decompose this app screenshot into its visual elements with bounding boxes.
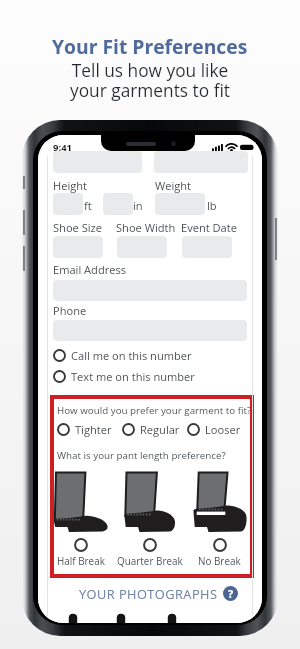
staticText: lb <box>207 198 217 213</box>
button[interactable]: Text me on this number <box>53 369 195 384</box>
button[interactable]: Help <box>223 586 238 601</box>
staticText: Tell us how you like your garments to fi… <box>70 59 230 102</box>
staticText: Call me on this number <box>71 348 192 363</box>
staticText: No Break <box>198 554 241 567</box>
staticText: Height <box>53 178 87 193</box>
staticText: ? <box>228 586 234 601</box>
staticText: Regular <box>140 422 180 437</box>
staticText: Phone <box>53 303 87 318</box>
staticText: Half Break <box>57 554 105 567</box>
staticText: Tighter <box>75 422 112 437</box>
staticText: 9:41 <box>53 141 73 154</box>
button[interactable]: Call me on this number <box>53 348 192 363</box>
staticText: YOUR PHOTOGRAPHS <box>79 585 218 602</box>
button[interactable]: Regular <box>122 422 180 437</box>
staticText: Weight <box>155 178 192 193</box>
staticText: Looser <box>205 422 241 437</box>
staticText: What is your pant length preference? <box>57 449 226 462</box>
staticText: Event Date <box>181 220 237 235</box>
staticText: Shoe Size <box>53 220 102 235</box>
staticText: Shoe Width <box>116 220 176 235</box>
staticText: How would you prefer your garment to fit… <box>57 404 252 417</box>
staticText: ft <box>84 198 92 213</box>
staticText: Email Address <box>53 262 127 277</box>
staticText: Your Fit Preferences <box>52 33 248 59</box>
staticText: in <box>133 198 143 213</box>
button[interactable]: Tighter <box>57 422 112 437</box>
button[interactable]: YOUR PHOTOGRAPHS <box>79 585 238 602</box>
staticText: Quarter Break <box>117 554 183 567</box>
button[interactable]: Quarter Break <box>119 472 180 512</box>
button[interactable]: Looser <box>187 422 241 437</box>
staticText: Text me on this number <box>71 369 195 384</box>
button[interactable]: No Break <box>189 472 250 512</box>
button[interactable]: Half Break <box>50 472 111 512</box>
